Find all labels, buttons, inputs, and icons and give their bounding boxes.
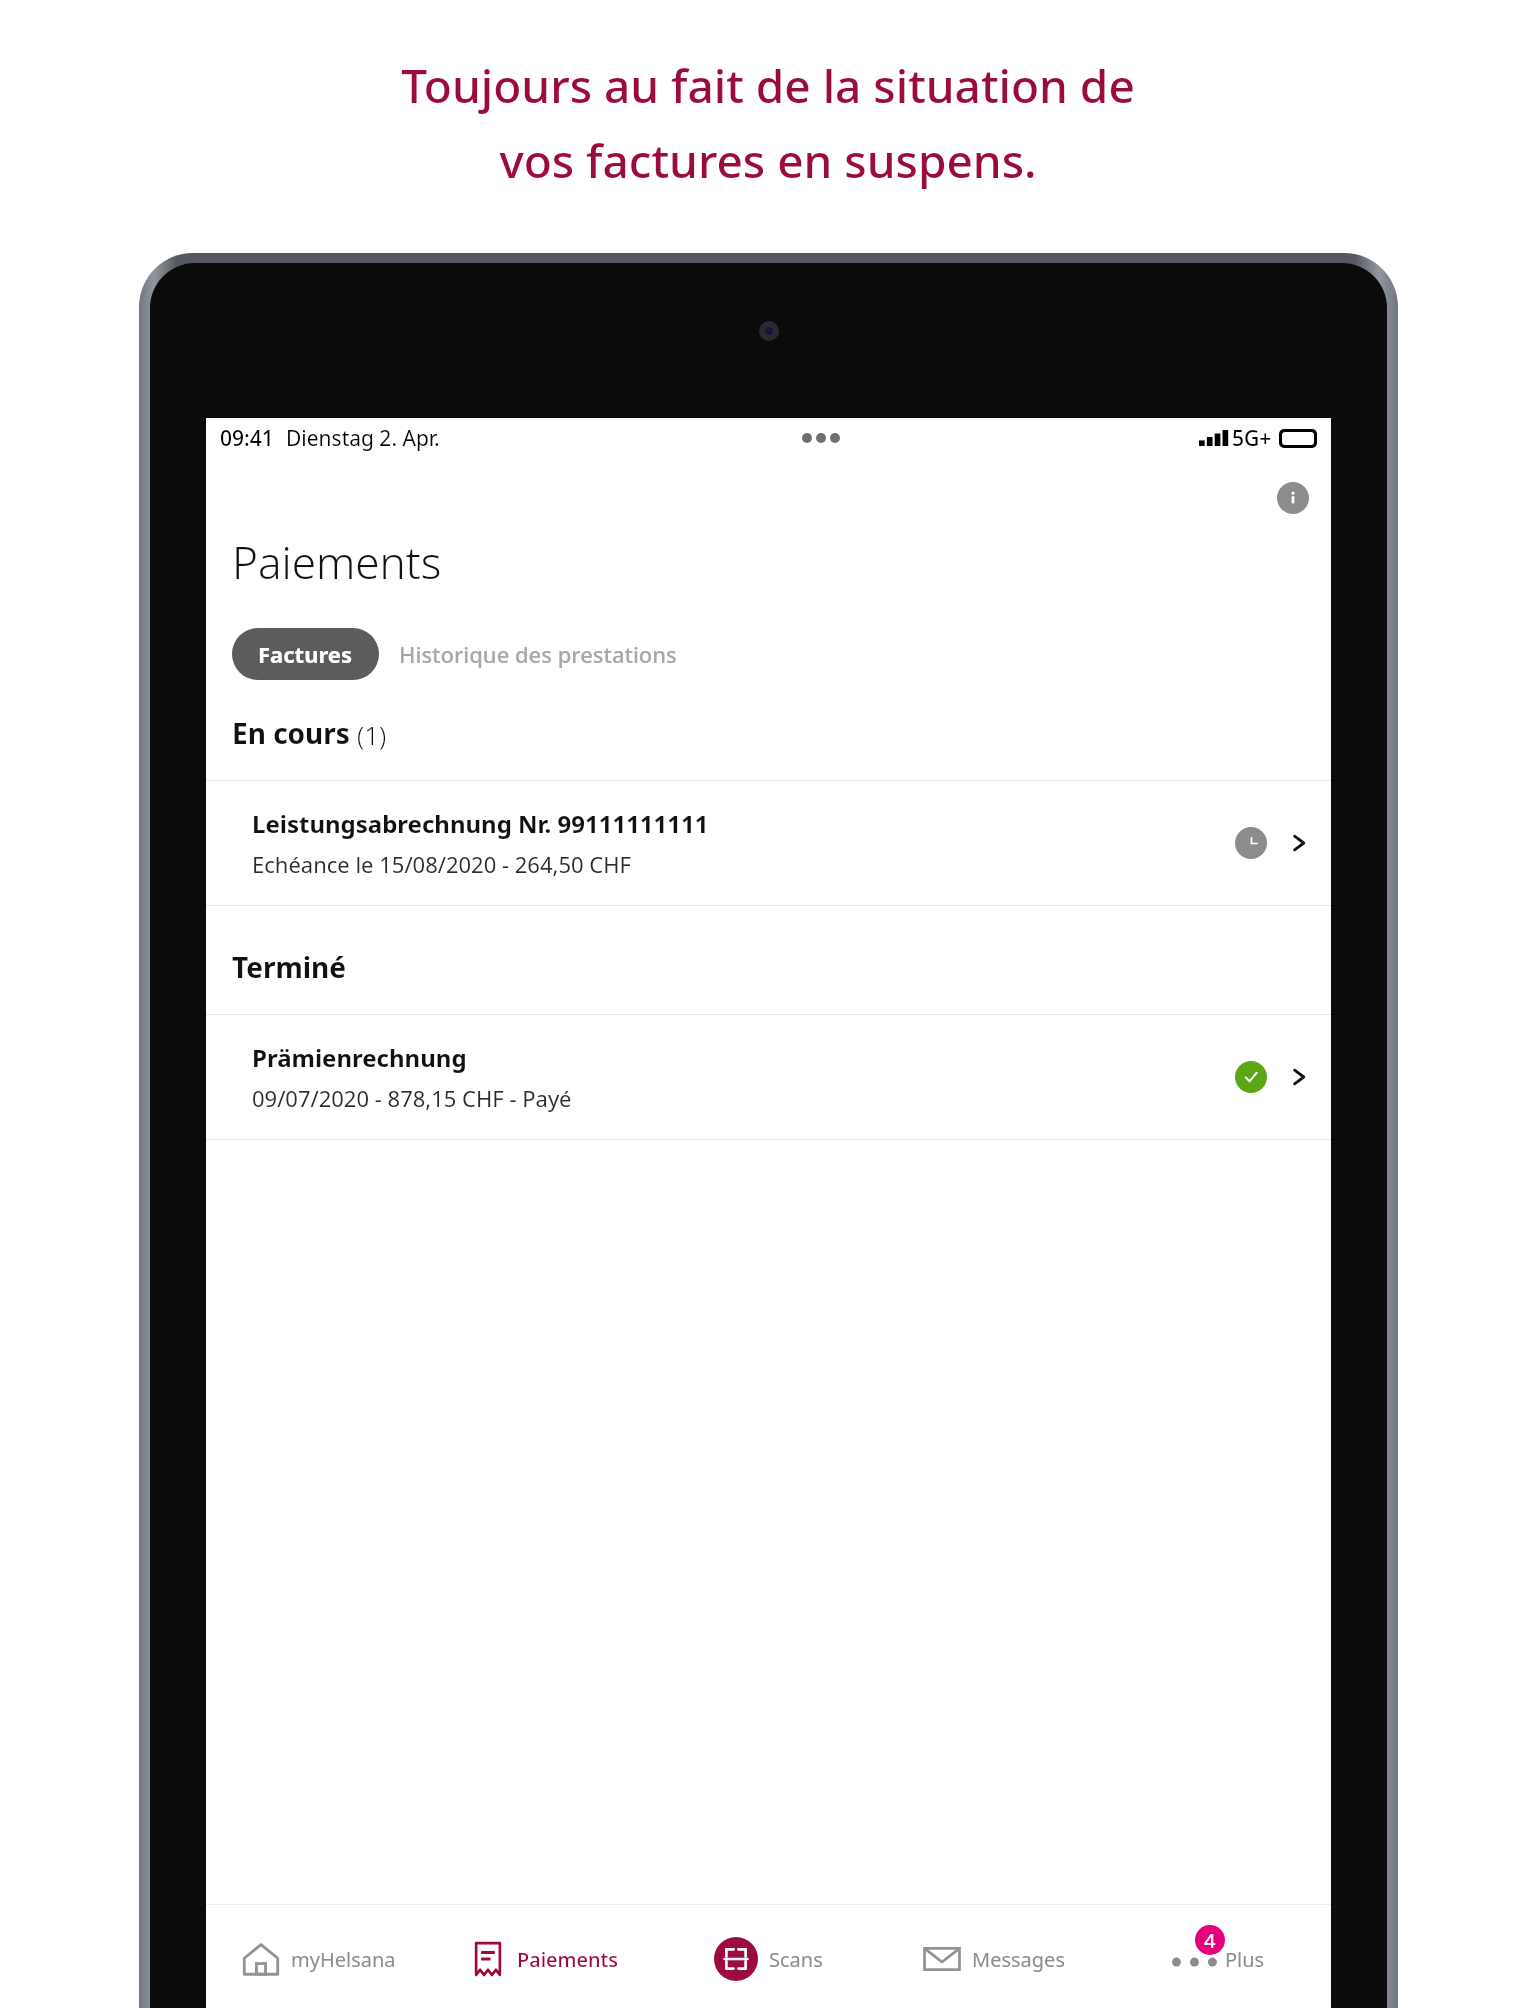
staticText: 09/07/2020 - 878,15 CHF - Payé: [252, 1083, 572, 1113]
staticText: 5G+: [1232, 424, 1272, 453]
staticText: Leistungsabrechnung Nr. 99111111111: [252, 807, 709, 840]
staticText: En cours: [232, 714, 350, 752]
button[interactable]: Leistungsabrechnung Nr. 99111111111: [206, 781, 1331, 905]
staticText: Plus: [1225, 1946, 1265, 1973]
staticText: 09:41: [220, 424, 274, 453]
staticText: Factures: [258, 639, 353, 669]
button[interactable]: Messages: [881, 1905, 1106, 2008]
button[interactable]: Paiements: [431, 1905, 656, 2008]
staticText: (1): [357, 717, 387, 752]
button[interactable]: Scans: [656, 1905, 881, 2008]
button[interactable]: Factures: [232, 628, 379, 680]
staticText: Terminé: [232, 948, 347, 986]
staticText: myHelsana: [291, 1946, 396, 1973]
staticText: Prämienrechnung: [252, 1041, 467, 1074]
button[interactable]: Informations: [1277, 482, 1309, 514]
button[interactable]: Historique des prestations: [379, 628, 697, 680]
staticText: Toujours au fait de la situation de: [401, 54, 1135, 117]
staticText: Paiements: [232, 532, 442, 592]
staticText: Dienstag 2. Apr.: [286, 424, 440, 453]
staticText: Scans: [769, 1946, 823, 1973]
staticText: 4: [1204, 1927, 1216, 1954]
staticText: Paiements: [517, 1946, 618, 1973]
staticText: Echéance le 15/08/2020 - 264,50 CHF: [252, 849, 631, 879]
staticText: Historique des prestations: [399, 639, 677, 669]
staticText: Messages: [972, 1946, 1065, 1973]
staticText: vos factures en suspens.: [499, 129, 1037, 192]
button[interactable]: myHelsana: [206, 1905, 431, 2008]
button[interactable]: 4: [1106, 1905, 1331, 2008]
button[interactable]: Prämienrechnung: [206, 1015, 1331, 1139]
